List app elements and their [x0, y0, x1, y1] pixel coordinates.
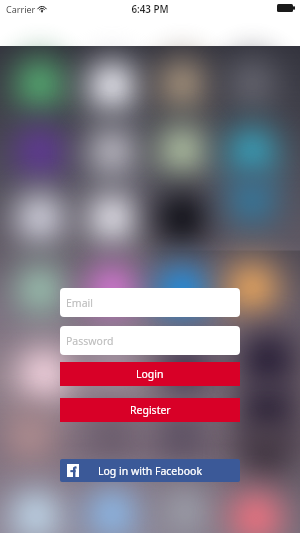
staticText: Password — [66, 334, 114, 348]
button[interactable]: Password — [60, 326, 240, 355]
staticText: Register — [130, 403, 171, 417]
staticText: Email — [66, 296, 93, 310]
button[interactable]: Login — [60, 362, 240, 386]
button[interactable]: Email — [60, 288, 240, 317]
staticText: Login — [136, 367, 164, 381]
button[interactable]: Register — [60, 398, 240, 422]
staticText: Log in with Facebook — [60, 464, 240, 478]
staticText: Carrier — [6, 3, 36, 15]
button[interactable]: Log in with Facebook — [60, 459, 240, 482]
staticText: 6:43 PM — [0, 3, 300, 16]
